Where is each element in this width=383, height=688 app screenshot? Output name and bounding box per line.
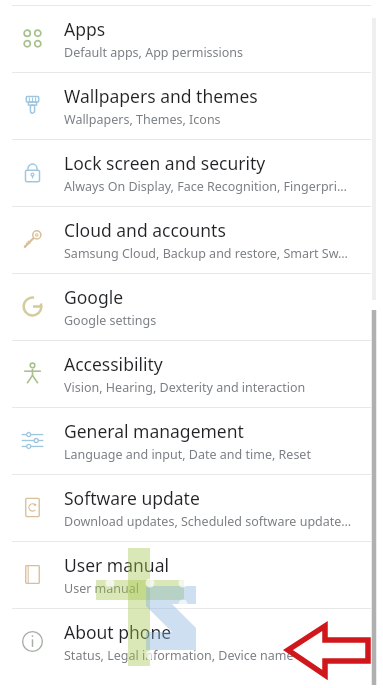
button[interactable]: Wallpapers and themes (0, 72, 383, 139)
staticText: Lock screen and security (64, 151, 266, 175)
staticText: Google settings (64, 312, 157, 329)
staticText: Google (64, 285, 124, 309)
button[interactable]: Accessibility (0, 340, 383, 407)
button[interactable]: General management (0, 407, 383, 474)
button[interactable]: Cloud and accounts (0, 206, 383, 273)
staticText: Accessibility (64, 352, 163, 376)
button[interactable]: Lock screen and security (0, 139, 383, 206)
staticText: Cloud and accounts (64, 218, 226, 242)
staticText: Default apps, App permissions (64, 44, 244, 61)
staticText: Language and input, Date and time, Reset (64, 446, 311, 463)
staticText: Status, Legal information, Device name (64, 647, 294, 664)
button[interactable]: User manual (0, 541, 383, 608)
staticText: Vision, Hearing, Dexterity and interacti… (64, 379, 306, 396)
staticText: General management (64, 419, 244, 443)
staticText: Software update (64, 486, 200, 510)
button[interactable]: About phone (0, 608, 383, 675)
staticText: Always On Display, Face Recognition, Fin… (64, 178, 347, 195)
button[interactable]: Apps (0, 5, 383, 72)
staticText: Download updates, Scheduled software upd… (64, 513, 352, 530)
button[interactable]: Software update (0, 474, 383, 541)
staticText: Apps (64, 17, 106, 41)
staticText: Wallpapers, Themes, Icons (64, 111, 221, 128)
staticText: Samsung Cloud, Backup and restore, Smart… (64, 245, 348, 262)
staticText: User manual (64, 553, 169, 577)
staticText: User manual (64, 580, 139, 597)
button[interactable]: Google (0, 273, 383, 340)
staticText: Wallpapers and themes (64, 84, 258, 108)
staticText: About phone (64, 620, 172, 644)
